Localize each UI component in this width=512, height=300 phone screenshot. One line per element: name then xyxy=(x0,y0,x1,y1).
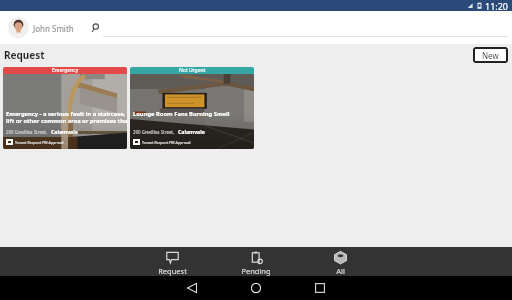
staticText: Emergency xyxy=(52,67,79,74)
staticText: 290 Grevillea Street, xyxy=(133,129,175,135)
staticText: Tenant Request PM Approval xyxy=(142,140,191,145)
staticText: New xyxy=(482,50,499,61)
staticText: Emergency - a serious fault in a stairca… xyxy=(6,110,127,125)
staticText: 290 Grevillea Street, xyxy=(6,129,48,135)
staticText: Not Urgent xyxy=(179,67,206,74)
button[interactable]: All xyxy=(316,247,364,276)
button[interactable]: Pending xyxy=(232,247,280,276)
staticText: All xyxy=(336,266,345,276)
button[interactable]: Emergency xyxy=(3,67,127,149)
button[interactable]: Recents xyxy=(308,276,332,300)
button[interactable]: New xyxy=(473,47,508,63)
staticText: Calamvale xyxy=(178,128,205,135)
button[interactable]: Profile xyxy=(8,17,29,38)
staticText: 11:20 xyxy=(485,0,509,11)
staticText: Request xyxy=(158,266,187,276)
button[interactable]: Request xyxy=(148,247,196,276)
button[interactable]: Back xyxy=(180,276,204,300)
staticText: Request xyxy=(4,48,45,62)
staticText: John Smith xyxy=(33,23,74,34)
button[interactable]: Home xyxy=(244,276,268,300)
staticText: Pending xyxy=(241,266,271,276)
button[interactable]: Not Urgent xyxy=(130,67,254,149)
button[interactable]: Search xyxy=(87,20,102,35)
staticText: Tenant Request PM Approval xyxy=(15,140,64,145)
staticText: Calamvale xyxy=(51,128,78,135)
staticText: Lounge Room Fans Burning Smell xyxy=(133,110,254,118)
